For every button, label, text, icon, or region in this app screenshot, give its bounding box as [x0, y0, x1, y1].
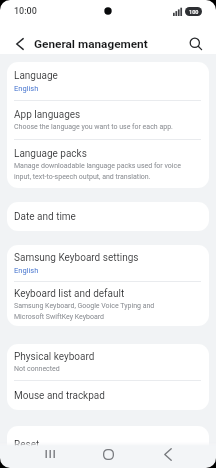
button[interactable]: App languages: [7, 101, 209, 139]
staticText: Language packs: [14, 148, 87, 160]
staticText: Samsung Keyboard settings: [14, 252, 139, 264]
button[interactable]: Physical keyboard: [7, 344, 209, 380]
button[interactable]: Date and time: [7, 202, 209, 231]
button[interactable]: [38, 442, 62, 466]
button[interactable]: Reset: [7, 426, 209, 464]
button[interactable]: [156, 442, 180, 466]
staticText: Microsoft SwiftKey Keyboard: [14, 313, 104, 321]
staticText: Choose the language you want to use for …: [14, 123, 173, 131]
staticText: Keyboard list and default: [14, 288, 125, 300]
staticText: Physical keyboard: [14, 351, 95, 363]
button[interactable]: [12, 36, 28, 52]
staticText: 10:00: [14, 6, 37, 16]
staticText: Mouse and trackpad: [14, 390, 105, 402]
staticText: App languages: [14, 109, 81, 121]
button[interactable]: [188, 36, 204, 52]
staticText: Manage downloadable language packs used …: [14, 162, 181, 170]
staticText: English: [14, 84, 39, 93]
staticText: Reset: [14, 439, 40, 451]
staticText: General management: [34, 37, 148, 51]
staticText: input, text-to-speech output, and transl…: [14, 173, 151, 181]
staticText: Not connected: [14, 365, 60, 373]
staticText: Samsung Keyboard, Google Voice Typing an…: [14, 302, 155, 310]
button[interactable]: Samsung Keyboard settings: [7, 245, 209, 281]
button[interactable]: [96, 442, 120, 466]
button[interactable]: Keyboard list and default: [7, 282, 209, 326]
staticText: Date and time: [14, 211, 76, 223]
staticText: Language: [14, 70, 58, 82]
staticText: 100: [189, 9, 199, 15]
button[interactable]: Language packs: [7, 140, 209, 188]
staticText: English: [14, 266, 39, 275]
button[interactable]: Mouse and trackpad: [7, 381, 209, 410]
button[interactable]: Language: [7, 62, 209, 100]
